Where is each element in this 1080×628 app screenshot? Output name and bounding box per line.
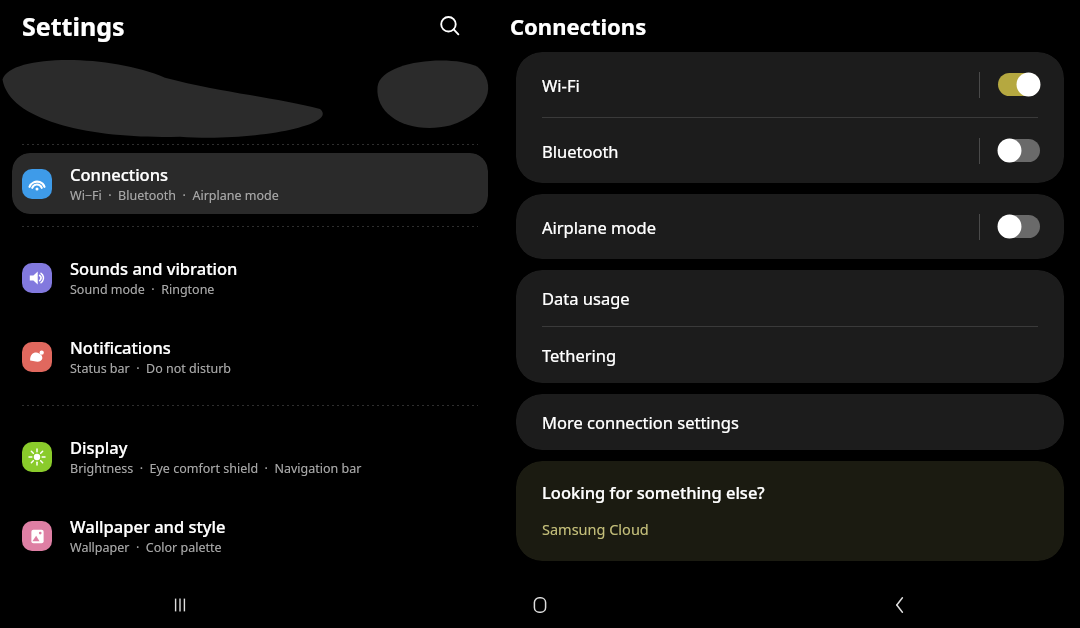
button[interactable]: On <box>998 73 1040 96</box>
staticText: Looking for something else? <box>542 481 765 503</box>
staticText: Sound mode · Ringtone <box>70 281 215 298</box>
staticText: Display <box>70 436 128 458</box>
button[interactable]: Notifications <box>12 326 488 387</box>
staticText: Connections <box>510 11 647 41</box>
button[interactable]: Looking for something else? <box>516 461 1064 561</box>
button[interactable]: More connection settings <box>516 394 1064 450</box>
button[interactable]: Connections <box>12 153 488 214</box>
staticText: Samsung Cloud <box>542 519 649 539</box>
button[interactable]: Back <box>720 582 1080 628</box>
button[interactable]: Search <box>430 6 470 46</box>
button[interactable]: Off <box>998 215 1040 238</box>
button[interactable]: Display <box>12 426 488 487</box>
staticText: More connection settings <box>542 411 739 433</box>
staticText: Notifications <box>70 336 171 358</box>
staticText: Bluetooth <box>542 140 979 162</box>
staticText: Tethering <box>542 344 617 366</box>
button[interactable]: Sounds and vibration <box>12 247 488 308</box>
staticText: Wallpaper · Color palette <box>70 539 222 556</box>
staticText: Wi-Fi <box>542 74 979 96</box>
button[interactable]: Wi-Fi <box>516 52 1064 117</box>
staticText: Data usage <box>542 287 630 309</box>
button[interactable]: Wallpaper and style <box>12 505 488 566</box>
staticText: Wi−Fi · Bluetooth · Airplane mode <box>70 187 279 204</box>
button[interactable]: Off <box>998 139 1040 162</box>
staticText: Connections <box>70 163 169 185</box>
button[interactable]: Home <box>360 582 720 628</box>
button[interactable]: Airplane mode <box>516 194 1064 259</box>
staticText: Status bar · Do not disturb <box>70 360 232 377</box>
button[interactable]: Bluetooth <box>516 118 1064 183</box>
staticText: Wallpaper and style <box>70 515 226 537</box>
button[interactable]: Tethering <box>516 327 1064 383</box>
staticText: Sounds and vibration <box>70 257 238 279</box>
button[interactable]: Recents <box>0 582 360 628</box>
staticText: Airplane mode <box>542 216 979 238</box>
button[interactable]: Data usage <box>516 270 1064 326</box>
staticText: Settings <box>22 9 125 43</box>
staticText: Brightness · Eye comfort shield · Naviga… <box>70 460 362 477</box>
